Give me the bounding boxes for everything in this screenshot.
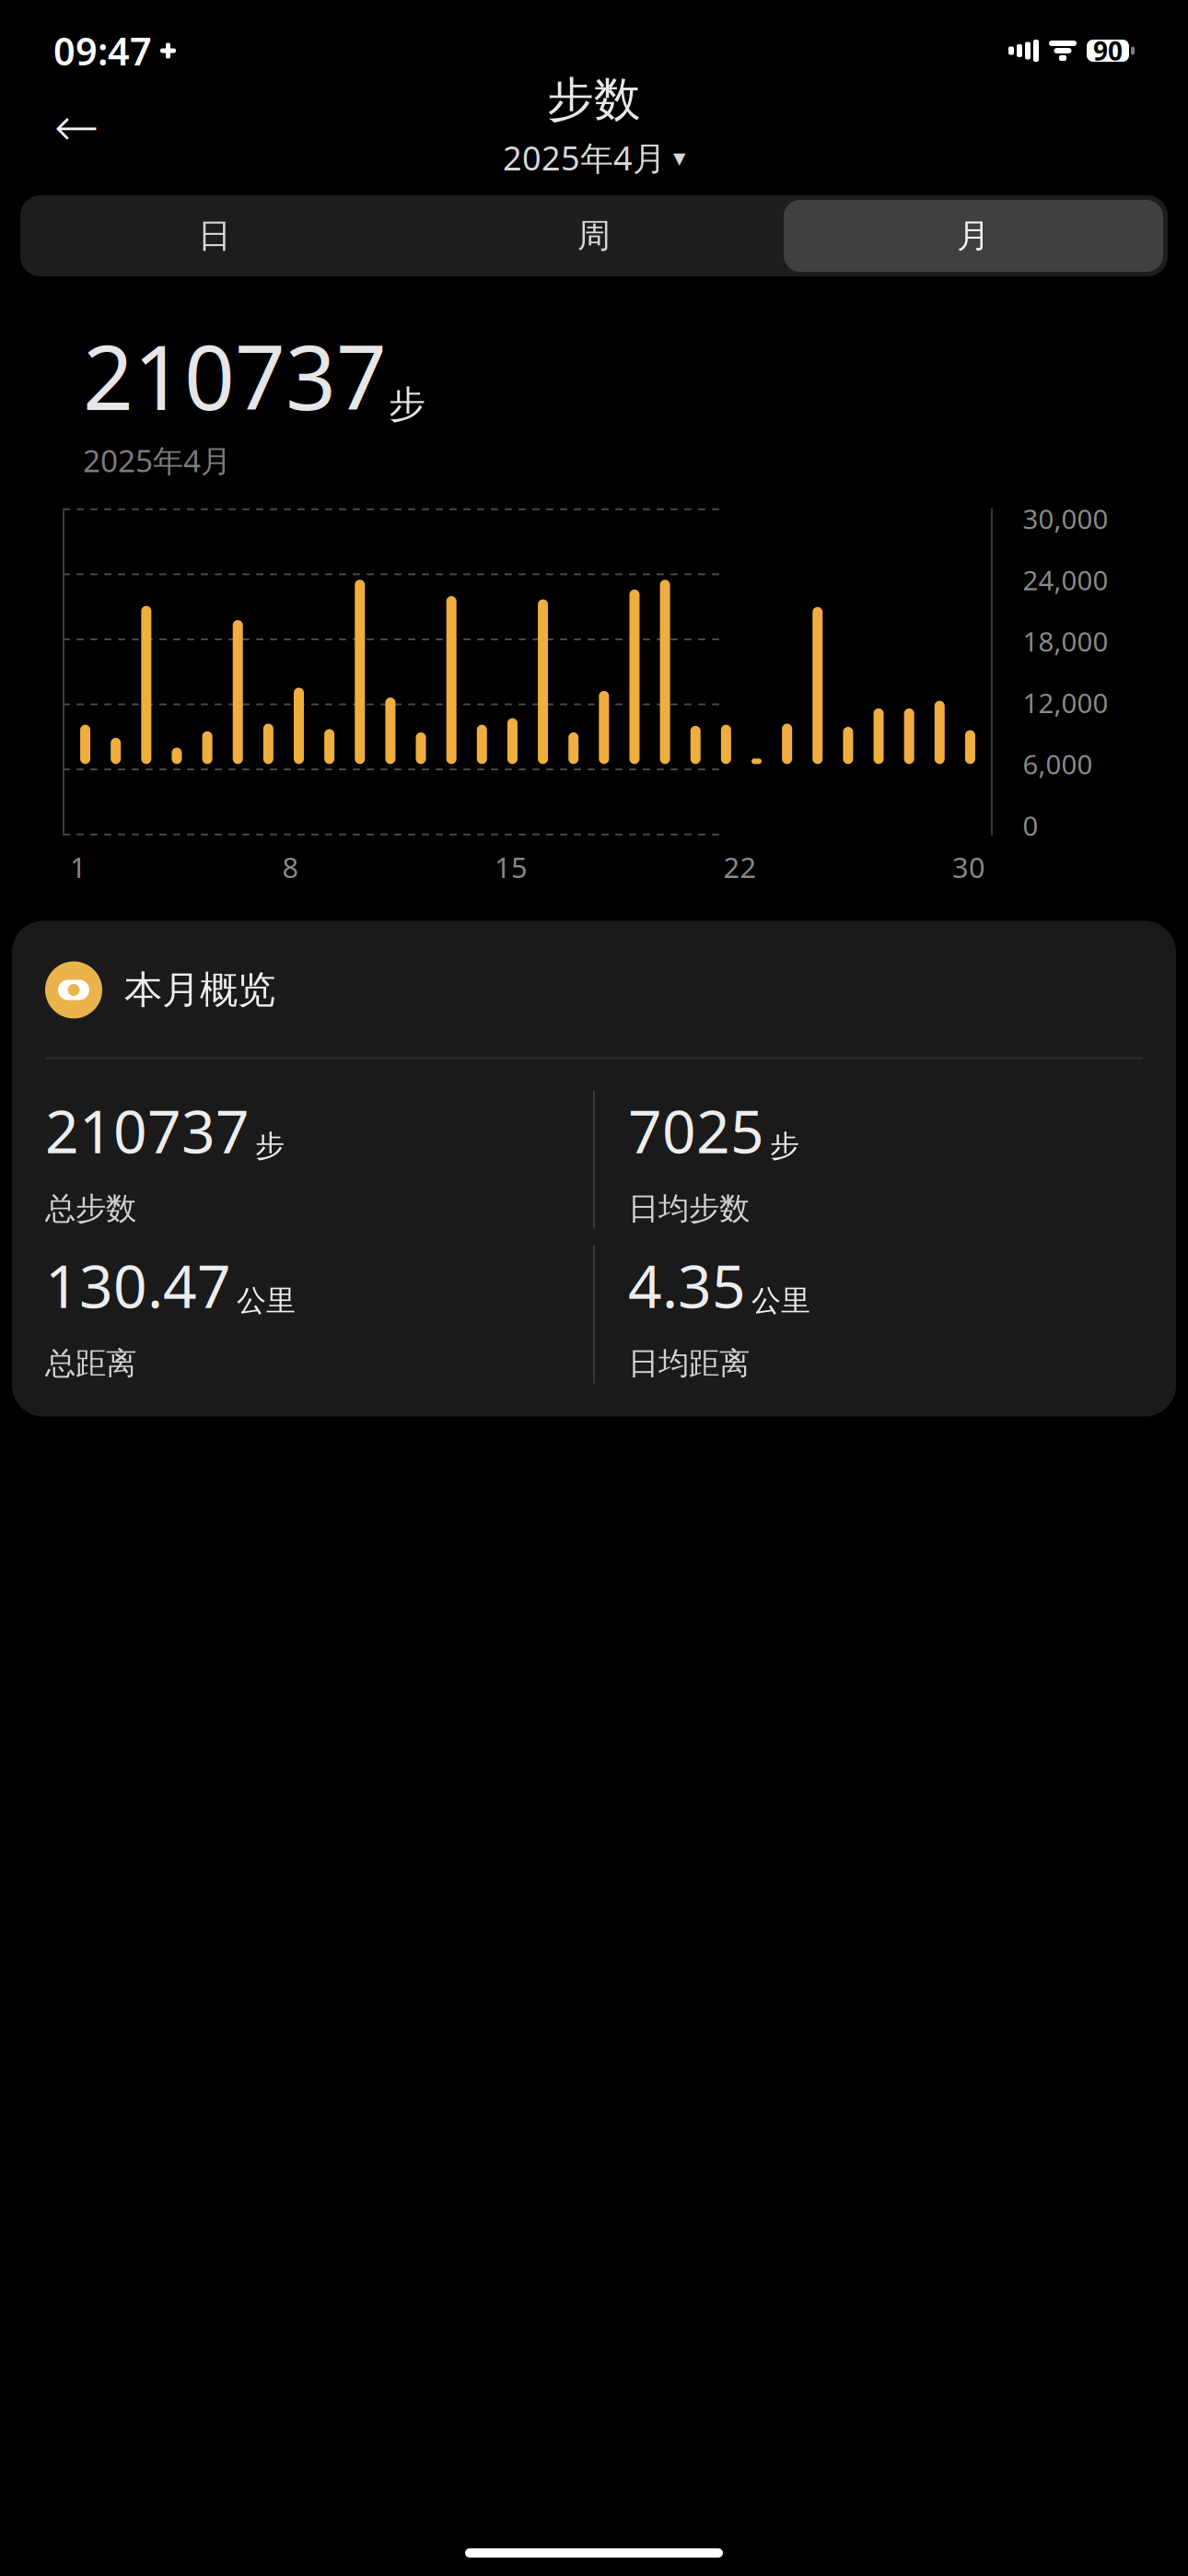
staticText: 4.35 <box>628 1246 746 1324</box>
staticText: ▾ <box>673 144 685 172</box>
staticText: 本月概览 <box>124 967 275 1013</box>
button[interactable]: 返回 <box>37 88 116 167</box>
staticText: 步数 <box>547 71 641 128</box>
staticText: 公里 <box>237 1283 296 1319</box>
staticText: 12,000 <box>1023 685 1108 721</box>
staticText: 130.47 <box>45 1246 231 1324</box>
staticText: 22 <box>723 848 757 886</box>
button[interactable]: 周 <box>404 200 784 272</box>
staticText: 210737 <box>83 317 387 434</box>
button[interactable]: 月 <box>784 200 1163 272</box>
staticText: 1 <box>70 848 87 886</box>
staticText: 90 <box>1093 34 1123 68</box>
button[interactable]: 日 <box>25 200 404 272</box>
button[interactable]: 2025年4月 <box>494 132 694 183</box>
staticText: 8 <box>282 848 299 886</box>
staticText: ← <box>54 96 99 158</box>
staticText: 步 <box>770 1128 799 1164</box>
staticText: 30 <box>952 848 985 886</box>
staticText: 步 <box>389 382 425 427</box>
staticText: 日均距离 <box>628 1345 750 1382</box>
staticText: 30,000 <box>1023 501 1108 536</box>
staticText: 7025 <box>628 1091 764 1170</box>
staticText: 09:47 <box>53 25 152 76</box>
staticText: 日 <box>198 215 231 256</box>
staticText: 2025年4月 <box>503 136 666 180</box>
staticText: 月 <box>957 215 990 256</box>
staticText: 6,000 <box>1023 746 1093 782</box>
staticText: 0 <box>1023 807 1038 843</box>
staticText: 15 <box>495 848 528 886</box>
staticText: 公里 <box>751 1283 810 1319</box>
staticText: 总步数 <box>45 1190 136 1228</box>
staticText: 日均步数 <box>628 1190 750 1228</box>
staticText: 步 <box>255 1128 285 1164</box>
staticText: 24,000 <box>1023 562 1108 598</box>
staticText: 210737 <box>45 1091 250 1170</box>
staticText: 周 <box>577 215 611 256</box>
staticText: 总距离 <box>45 1345 136 1382</box>
staticText: 18,000 <box>1023 623 1108 659</box>
staticText: 2025年4月 <box>83 440 231 481</box>
